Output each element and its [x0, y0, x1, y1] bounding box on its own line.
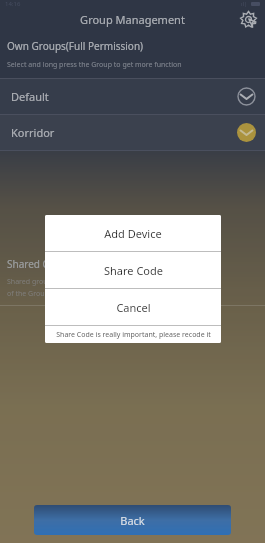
staticText: Shared Groups	[7, 257, 77, 271]
staticText: 14:16	[5, 0, 21, 7]
staticText: Group Management	[80, 12, 185, 27]
button[interactable]: Cancel	[45, 289, 221, 325]
button[interactable]: Share Code	[45, 252, 221, 288]
staticText: ıl|	[241, 0, 248, 7]
staticText: Korridor	[11, 125, 55, 140]
button[interactable]: Settings	[237, 8, 259, 30]
staticText: Share Code is really important, please r…	[56, 330, 211, 340]
staticText: Cancel	[116, 300, 151, 315]
staticText: of the Group owner.	[7, 289, 73, 299]
staticText: Own Groups(Full Permission)	[7, 39, 144, 53]
staticText: Default	[11, 89, 49, 104]
staticText: Add Device	[104, 226, 162, 241]
staticText: Share Code	[104, 263, 163, 278]
staticText: Select and long press the Group to get m…	[7, 60, 182, 70]
button[interactable]: Korridor	[0, 115, 265, 150]
button[interactable]: Default	[0, 79, 265, 114]
staticText: Back	[120, 513, 145, 528]
button[interactable]: Back	[34, 505, 231, 535]
staticText: Shared groups are added to your account …	[7, 277, 199, 287]
button[interactable]: Add Device	[45, 215, 221, 251]
